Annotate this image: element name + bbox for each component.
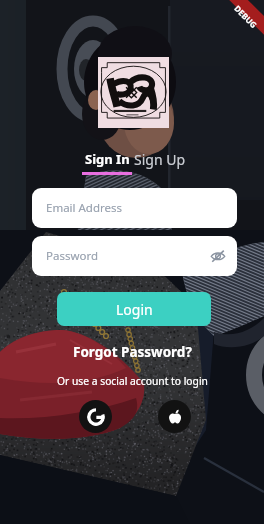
button[interactable]: Email Address bbox=[32, 188, 237, 228]
button[interactable]: Sign in with Apple bbox=[158, 400, 191, 433]
staticText: Login bbox=[116, 300, 153, 319]
staticText: Password bbox=[46, 248, 99, 264]
staticText: Sign In bbox=[85, 150, 130, 168]
button[interactable]: Toggle password visibility bbox=[210, 248, 226, 264]
button[interactable]: Sign in with Google bbox=[79, 400, 112, 433]
button[interactable]: Password bbox=[32, 236, 237, 276]
staticText: Sign Up bbox=[134, 150, 186, 169]
staticText: DEBUG bbox=[232, 3, 260, 30]
staticText: Forgot Password? bbox=[73, 343, 192, 361]
button[interactable]: Login bbox=[57, 292, 211, 326]
staticText: Email Address bbox=[46, 200, 123, 216]
button[interactable]: Forgot Password? bbox=[67, 340, 198, 364]
staticText: Or use a social account to login bbox=[57, 374, 208, 388]
button[interactable]: Sign In bbox=[82, 150, 132, 175]
button[interactable]: Sign Up bbox=[134, 150, 186, 172]
